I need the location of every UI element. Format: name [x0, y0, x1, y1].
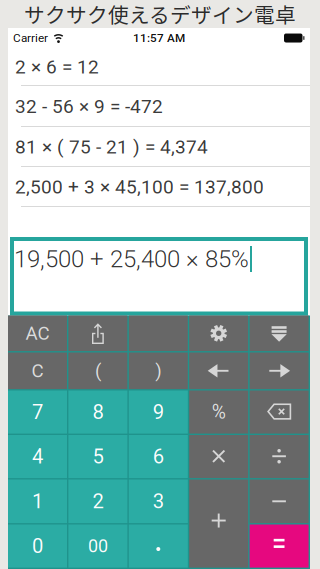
staticText: 4 [32, 445, 43, 468]
staticText: Carrier [13, 31, 48, 45]
button[interactable]: ( [68, 352, 127, 389]
staticText: 11:57 AM [133, 31, 185, 45]
button[interactable]: 81 × ( 75 - 21 ) = 4,374 [8, 127, 310, 167]
button[interactable]: Hide keyboard [250, 315, 309, 351]
button[interactable]: ) [129, 352, 188, 389]
staticText: AC [25, 322, 49, 344]
button[interactable]: 7 [8, 390, 67, 434]
button[interactable]: Decimal point [129, 524, 188, 568]
staticText: ( [95, 360, 101, 382]
button[interactable]: 32 - 56 × 9 = -472 [8, 86, 310, 127]
button[interactable]: Minus [250, 479, 309, 523]
staticText: 2,500 + 3 × 45,100 = 137,800 [15, 176, 264, 198]
staticText: 9 [153, 400, 164, 424]
button[interactable]: AC [8, 315, 67, 351]
staticText: C [31, 360, 43, 382]
button[interactable]: 1 [8, 479, 67, 523]
staticText: 7 [32, 400, 43, 424]
staticText: 3 [153, 489, 164, 513]
staticText: 8 [92, 400, 103, 424]
staticText: 6 [153, 445, 164, 468]
staticText: 2 × 6 = 12 [15, 56, 99, 78]
button[interactable]: Move cursor right [250, 352, 309, 389]
staticText: 1 [32, 489, 43, 513]
button[interactable]: Plus [189, 479, 248, 568]
staticText: 00 [88, 535, 108, 557]
staticText: 19,500 + 25,400 × 85% [14, 245, 249, 273]
button[interactable]: C [8, 352, 67, 389]
staticText: ) [155, 360, 161, 382]
button[interactable]: 00 [68, 524, 127, 568]
staticText: 2 [92, 489, 103, 513]
button[interactable]: 2,500 + 3 × 45,100 = 137,800 [8, 167, 310, 207]
button[interactable]: Divide [250, 435, 309, 478]
button[interactable]: 2 [68, 479, 127, 523]
staticText: 5 [92, 445, 103, 468]
button[interactable]: 0 [8, 524, 67, 568]
button[interactable]: Multiply [189, 435, 248, 478]
button[interactable]: 4 [8, 435, 67, 478]
button[interactable]: % [189, 390, 248, 434]
staticText: % [212, 401, 226, 423]
staticText: 32 - 56 × 9 = -472 [15, 95, 163, 118]
button[interactable]: Share [68, 315, 127, 351]
button[interactable]: Equals [250, 524, 309, 568]
staticText: 81 × ( 75 - 21 ) = 4,374 [15, 136, 208, 158]
button[interactable]: 6 [129, 435, 188, 478]
button[interactable]: 3 [129, 479, 188, 523]
button[interactable]: 8 [68, 390, 127, 434]
button[interactable]: 2 × 6 = 12 [8, 48, 310, 86]
button[interactable]: 9 [129, 390, 188, 434]
button[interactable]: Settings [189, 315, 248, 351]
button[interactable]: 5 [68, 435, 127, 478]
button[interactable]: Delete [250, 390, 309, 434]
button[interactable]: Move cursor left [189, 352, 248, 389]
staticText: サクサク使えるデザイン電卓 [24, 0, 296, 29]
staticText: 0 [32, 534, 43, 558]
